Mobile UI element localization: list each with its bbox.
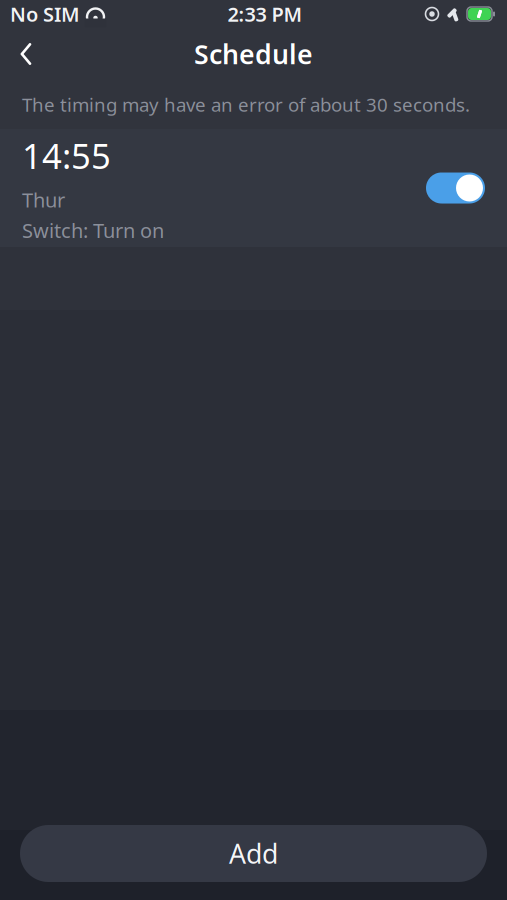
button[interactable]: Add (20, 825, 487, 882)
staticText: 2:33 PM (227, 1, 302, 27)
staticText: 14:55 (22, 132, 111, 178)
staticText: Schedule (194, 36, 313, 72)
button[interactable]: 14:55 (0, 129, 507, 247)
staticText: Switch: Turn on (22, 217, 164, 244)
staticText: No SIM (10, 1, 80, 27)
staticText: Thur (22, 186, 65, 213)
staticText: The timing may have an error of about 30… (22, 92, 470, 117)
button[interactable]: Back (0, 28, 52, 80)
staticText: Add (229, 836, 278, 871)
